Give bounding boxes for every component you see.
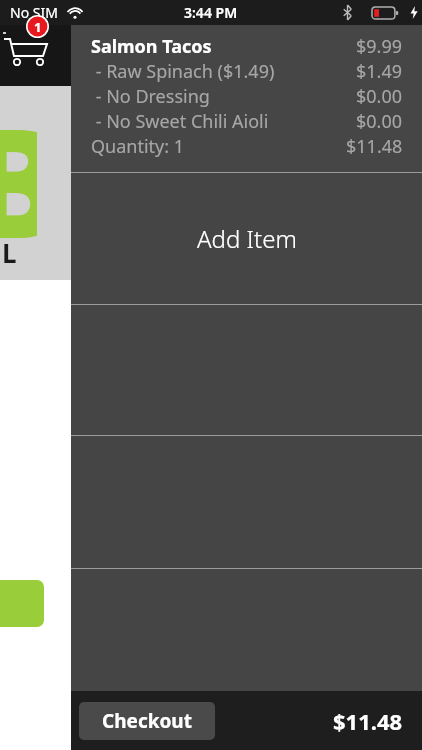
staticText: Quantity: 1 [91, 134, 185, 159]
staticText: 1 [34, 18, 42, 36]
staticText: L [2, 235, 17, 270]
button[interactable] [71, 569, 422, 750]
button[interactable]: Checkout [79, 702, 215, 740]
staticText: Checkout [102, 708, 192, 734]
staticText: $1.49 [356, 59, 403, 84]
staticText: - No Sweet Chili Aioli [91, 109, 269, 134]
staticText: Salmon Tacos [91, 34, 212, 59]
button[interactable] [0, 580, 44, 627]
staticText: $11.48 [333, 706, 403, 736]
staticText: $0.00 [356, 109, 403, 134]
staticText: No SIM [10, 3, 58, 22]
button[interactable]: Salmon Tacos [71, 25, 422, 172]
button[interactable]: Cart, 1 item [0, 25, 62, 71]
staticText: $9.99 [356, 34, 403, 59]
staticText: - No Dressing [91, 84, 210, 109]
staticText: Add Item [197, 222, 297, 255]
staticText: - Raw Spinach ($1.49) [91, 59, 275, 84]
staticText: 3:44 PM [184, 3, 238, 22]
staticText: $0.00 [356, 84, 403, 109]
staticText: B [0, 78, 37, 272]
button[interactable]: Add Item [71, 173, 422, 304]
staticText: $11.48 [346, 134, 403, 159]
